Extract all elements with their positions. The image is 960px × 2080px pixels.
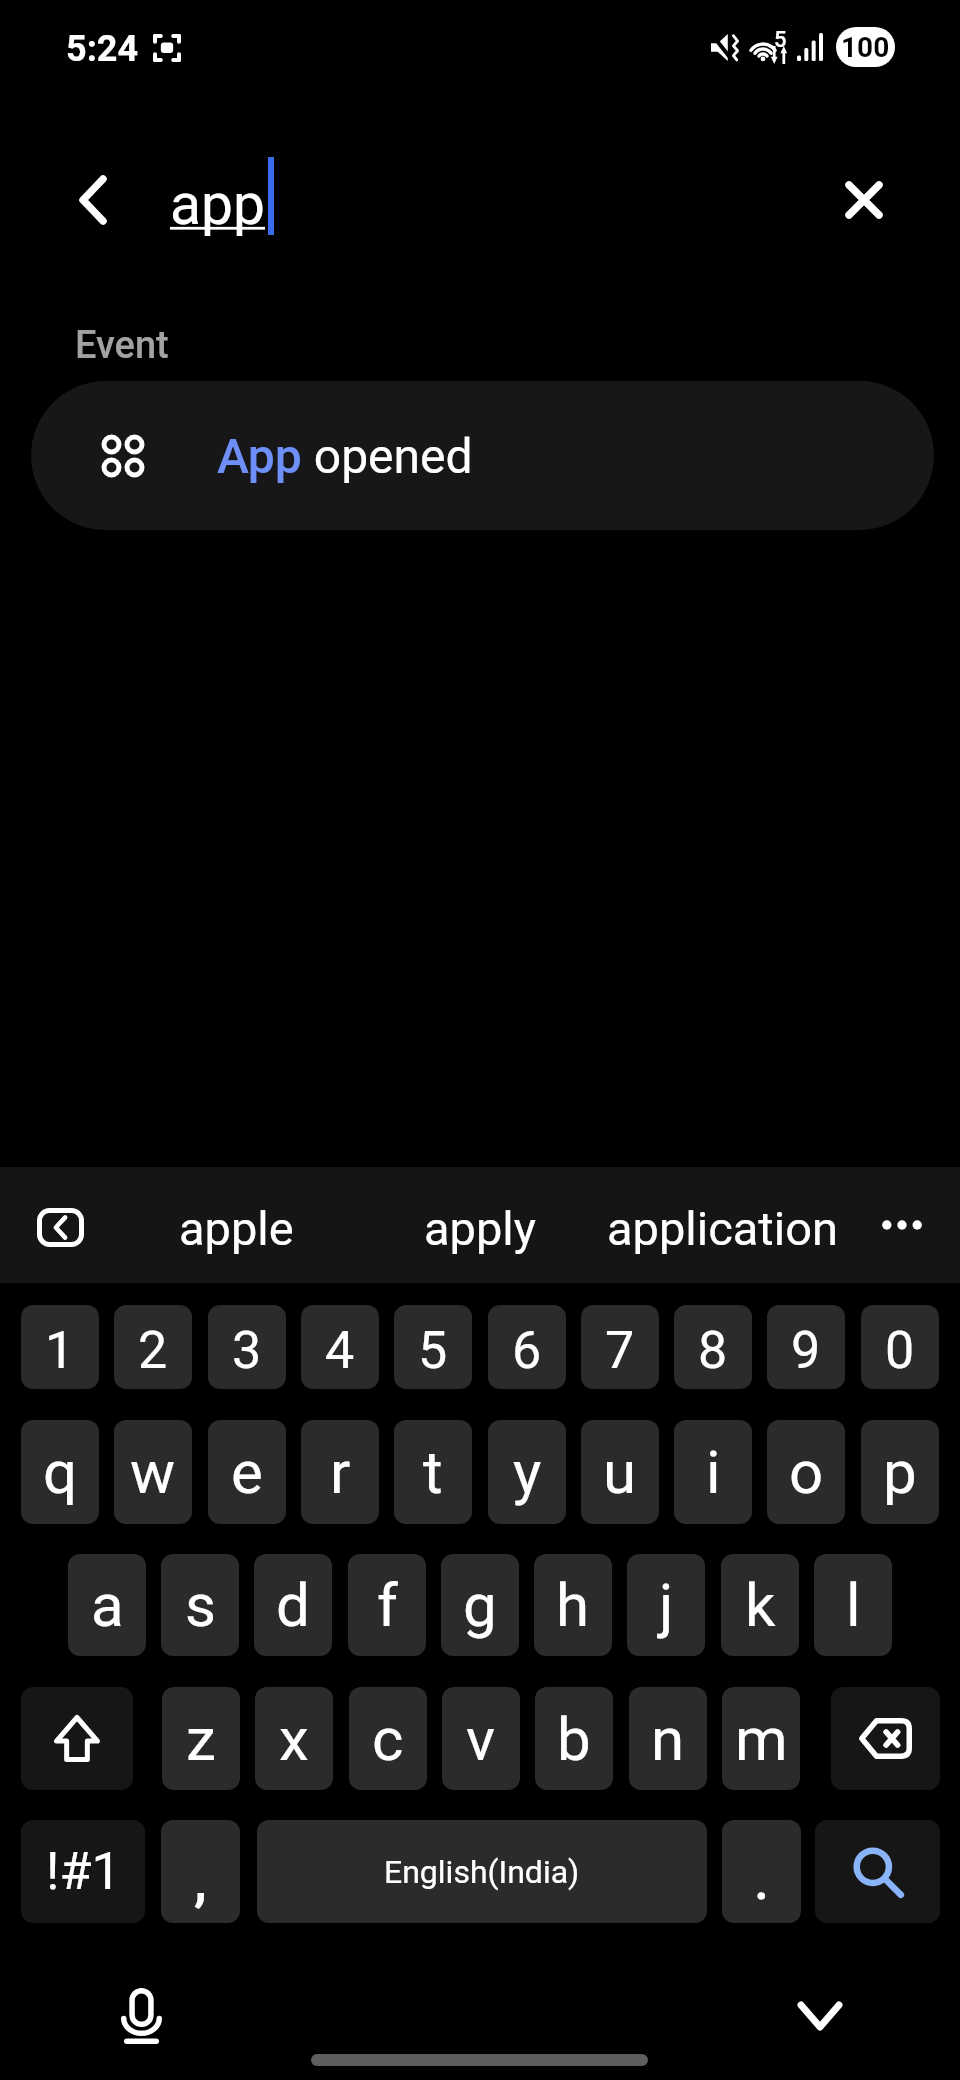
staticText: , [194,1846,207,1914]
staticText: apply [424,1201,537,1256]
staticText: g [463,1570,497,1640]
staticText: u [603,1437,637,1507]
button[interactable]: 0 [861,1305,939,1389]
staticText: b [557,1704,591,1774]
button[interactable]: g [441,1554,519,1656]
staticText: 5 [418,1320,448,1381]
staticText: n [651,1704,685,1774]
button[interactable]: . [722,1820,801,1923]
button[interactable]: w [114,1420,192,1524]
staticText: 1 [45,1320,75,1381]
staticText: a [91,1570,124,1640]
button[interactable]: r [301,1420,379,1524]
button[interactable]: 1 [21,1305,99,1389]
staticText: o [789,1437,824,1507]
button[interactable]: e [208,1420,286,1524]
staticText: d [276,1570,310,1640]
button[interactable]: 9 [767,1305,845,1389]
staticText: e [231,1437,263,1507]
staticText: z [186,1704,216,1774]
button[interactable]: application [592,1167,852,1283]
staticText: 4 [325,1320,355,1381]
staticText: h [556,1570,590,1640]
button[interactable]: More suggestions [866,1189,938,1261]
button[interactable]: z [162,1687,240,1790]
button[interactable]: c [349,1687,427,1790]
staticText: v [466,1704,496,1774]
button[interactable]: 6 [488,1305,566,1389]
staticText: l [846,1570,861,1640]
button[interactable]: App opened [31,381,934,530]
button[interactable]: apple [106,1167,366,1283]
button[interactable]: Back [57,164,129,236]
staticText: app [170,171,266,238]
button[interactable]: 5 [394,1305,472,1389]
staticText: . [754,1849,770,1912]
button[interactable]: 4 [301,1305,379,1389]
staticText: 100 [841,31,890,64]
staticText: 5 [774,27,787,53]
button[interactable]: n [629,1687,707,1790]
button[interactable]: 8 [674,1305,752,1389]
button[interactable]: s [161,1554,239,1656]
staticText: s [185,1570,216,1640]
staticText: k [745,1570,776,1640]
button[interactable]: 3 [208,1305,286,1389]
staticText: Event [75,323,169,368]
button[interactable]: a [68,1554,146,1656]
staticText: y [513,1437,542,1507]
button[interactable]: y [488,1420,566,1524]
staticText: t [423,1437,443,1507]
button[interactable]: v [442,1687,520,1790]
button[interactable]: q [21,1420,99,1524]
staticText: x [279,1704,309,1774]
staticText: w [130,1437,176,1507]
button[interactable]: apply [350,1167,610,1283]
button[interactable]: o [767,1420,845,1524]
button[interactable]: j [627,1554,705,1656]
button[interactable]: Clear search [828,164,900,236]
button[interactable]: Backspace [831,1687,940,1790]
button[interactable]: !#1 [21,1820,145,1923]
button[interactable]: Search [815,1820,940,1923]
staticText: p [883,1437,917,1507]
button[interactable]: Shift [21,1687,133,1790]
button[interactable]: b [535,1687,613,1790]
button[interactable]: d [254,1554,332,1656]
staticText: r [330,1437,351,1507]
staticText: c [372,1704,404,1774]
staticText: application [607,1201,838,1256]
staticText: App opened [217,428,473,484]
staticText: 8 [698,1320,728,1381]
button[interactable]: l [814,1554,892,1656]
button[interactable]: 7 [581,1305,659,1389]
button[interactable]: x [255,1687,333,1790]
button[interactable]: p [861,1420,939,1524]
button[interactable]: 2 [114,1305,192,1389]
staticText: q [43,1437,78,1507]
staticText: i [706,1437,721,1507]
staticText: apple [179,1201,294,1256]
button[interactable]: Hide keyboard [790,1986,850,2046]
staticText: m [735,1704,788,1774]
button[interactable]: m [722,1687,800,1790]
button[interactable]: h [534,1554,612,1656]
button[interactable]: u [581,1420,659,1524]
button[interactable]: , [161,1820,240,1923]
staticText: j [659,1570,674,1640]
staticText: 0 [885,1320,915,1381]
staticText: 2 [138,1320,168,1381]
staticText: 6 [512,1320,542,1381]
button[interactable]: k [721,1554,799,1656]
button[interactable]: Voice input [110,1985,172,2047]
button[interactable]: app [152,152,812,248]
staticText: !#1 [46,1841,121,1902]
button[interactable]: t [394,1420,472,1524]
staticText: 3 [232,1320,262,1381]
staticText: 5:24 [66,28,139,70]
button[interactable]: English(India) [257,1820,707,1923]
button[interactable]: Previous suggestions [24,1191,96,1263]
button[interactable]: f [348,1554,426,1656]
staticText: 7 [605,1320,635,1381]
button[interactable]: i [674,1420,752,1524]
